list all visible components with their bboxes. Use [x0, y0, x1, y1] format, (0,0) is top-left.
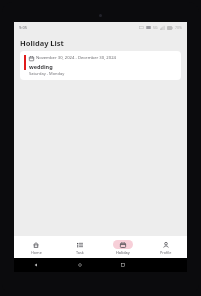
- button[interactable]: Home: [58, 258, 101, 272]
- staticText: 70%: [175, 25, 182, 30]
- staticText: 5G: [153, 25, 158, 30]
- button[interactable]: Home: [14, 236, 58, 258]
- staticText: Holiday List: [20, 38, 64, 48]
- button[interactable]: Back: [14, 258, 58, 272]
- staticText: Saturday - Monday: [29, 71, 65, 76]
- button[interactable]: Task: [58, 236, 101, 258]
- other: Holiday: [120, 242, 126, 248]
- button[interactable]: Profile: [144, 236, 187, 258]
- staticText: 9:05: [19, 25, 27, 30]
- button[interactable]: Holiday: [101, 236, 144, 258]
- other: Home: [33, 242, 39, 248]
- staticText: Home: [31, 250, 42, 255]
- button[interactable]: Recents: [101, 258, 144, 272]
- staticText: November 30, 2024 - December 30, 2024: [36, 55, 116, 61]
- staticText: wedding: [29, 63, 53, 70]
- other: Profile: [163, 242, 169, 248]
- other: Task: [77, 242, 83, 248]
- button[interactable]: November 30, 2024 - December 30, 2024: [20, 51, 181, 80]
- staticText: Profile: [160, 250, 172, 255]
- staticText: Holiday: [116, 250, 130, 255]
- staticText: Task: [76, 250, 84, 255]
